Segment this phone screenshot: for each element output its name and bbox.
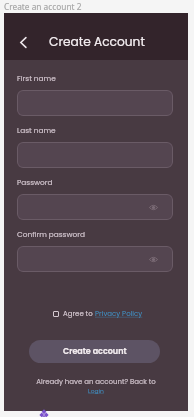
button[interactable]: Show password xyxy=(146,252,160,266)
button[interactable]: Back xyxy=(13,32,33,52)
staticText: Password xyxy=(17,177,53,187)
button[interactable]: Show password xyxy=(146,200,160,214)
button[interactable] xyxy=(17,90,173,116)
staticText: Confirm password xyxy=(17,229,86,239)
staticText: Create Account xyxy=(49,33,145,50)
staticText: Create account xyxy=(63,346,127,357)
button[interactable]: Create account xyxy=(29,340,160,363)
staticText: First name xyxy=(17,73,56,83)
button[interactable] xyxy=(17,142,173,168)
button[interactable]: Login xyxy=(88,387,104,395)
staticText: Agree to xyxy=(63,309,95,319)
staticText: Create an account 2 xyxy=(4,1,82,12)
staticText: Privacy Policy xyxy=(95,309,143,319)
button[interactable]: Agree to xyxy=(53,309,143,319)
staticText: Already have an account? Back to xyxy=(36,377,156,387)
button[interactable]: Show password xyxy=(17,246,173,272)
button[interactable]: Show password xyxy=(17,194,173,220)
staticText: Last name xyxy=(17,125,56,135)
